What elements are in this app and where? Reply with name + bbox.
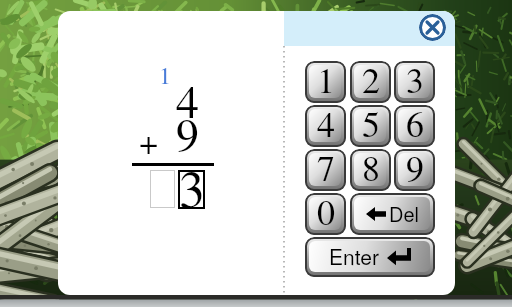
staticText: 2 [362,61,380,103]
staticText: 6 [406,105,424,147]
button[interactable]: 3 [394,61,435,103]
staticText: 3 [406,61,424,103]
staticText: 9 [176,102,199,163]
button[interactable]: 0 [305,193,346,235]
button[interactable]: 1 [305,61,346,103]
button[interactable]: 8 [350,149,391,191]
button[interactable]: 2 [350,61,391,103]
button[interactable]: 6 [394,105,435,147]
staticText: 4 [317,105,335,147]
staticText: 8 [362,149,380,191]
button[interactable]: Enter [305,237,435,277]
button[interactable]: Del [350,193,435,235]
staticText: 7 [317,149,335,191]
staticText: Enter [329,241,379,271]
staticText: 4 [176,69,199,130]
button[interactable] [419,14,446,41]
staticText: 3 [179,152,206,221]
staticText: Del [389,199,419,228]
staticText: 0 [317,193,335,235]
button[interactable]: 5 [350,105,391,147]
staticText: + [139,118,159,163]
staticText: 5 [362,105,380,147]
button[interactable]: 7 [305,149,346,191]
staticText: 1 [317,61,335,103]
button[interactable]: 9 [394,149,435,191]
staticText: 1 [159,59,171,91]
button[interactable]: 4 [305,105,346,147]
staticText: 9 [406,149,424,191]
